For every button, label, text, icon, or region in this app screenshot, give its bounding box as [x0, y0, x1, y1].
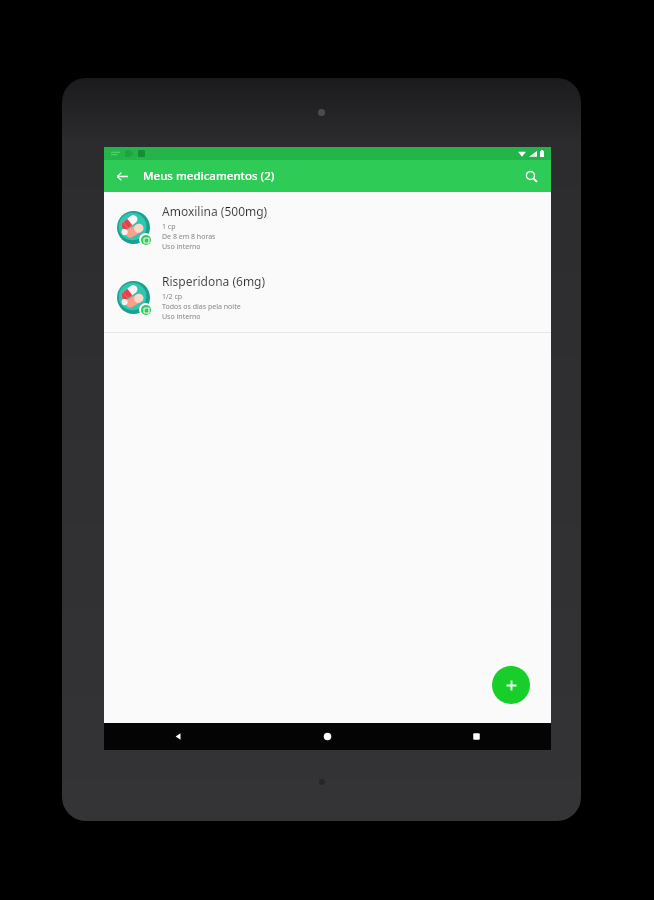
staticText: Risperidona (6mg): [162, 273, 266, 289]
button[interactable]: Recentes: [402, 723, 551, 750]
staticText: Todos os dias pela noite: [162, 302, 241, 312]
staticText: Uso interno: [162, 242, 201, 252]
staticText: Meus medicamentos (2): [143, 168, 275, 184]
staticText: 1 cp: [162, 222, 176, 232]
button[interactable]: Risperidona (6mg): [104, 262, 551, 332]
button[interactable]: Voltar: [109, 163, 135, 189]
button[interactable]: Adicionar medicamento: [492, 666, 530, 704]
staticText: Amoxilina (500mg): [162, 203, 268, 219]
button[interactable]: Início: [253, 723, 402, 750]
button[interactable]: Voltar: [104, 723, 253, 750]
button[interactable]: Pesquisar: [518, 163, 544, 189]
staticText: De 8 em 8 horas: [162, 232, 216, 242]
staticText: 1/2 cp: [162, 292, 183, 302]
staticText: Uso interno: [162, 312, 201, 322]
button[interactable]: Amoxilina (500mg): [104, 192, 551, 262]
